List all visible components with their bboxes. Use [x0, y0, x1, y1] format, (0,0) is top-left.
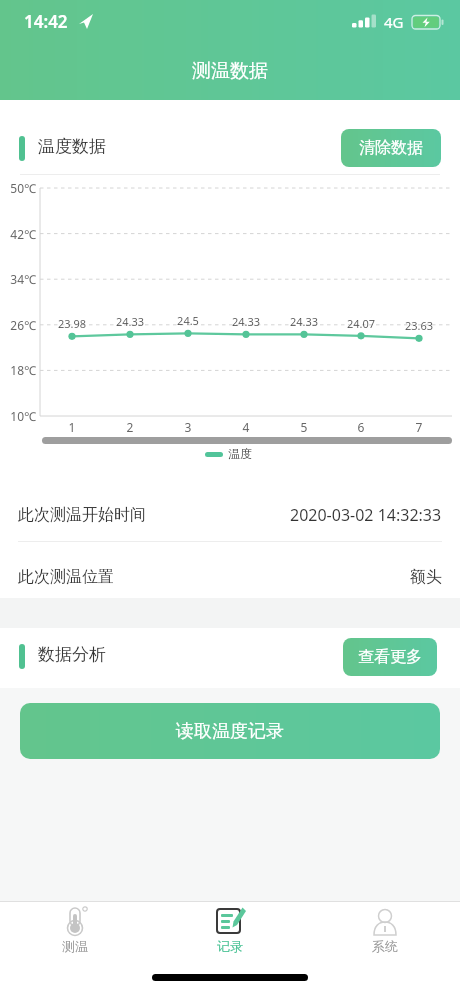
button[interactable]: 查看更多 [343, 638, 437, 676]
staticText: 34℃ [0, 271, 36, 287]
button[interactable]: 系统 [345, 906, 425, 954]
staticText: 10℃ [0, 408, 36, 424]
staticText: 5 [289, 419, 319, 435]
staticText: 14:42 [24, 10, 68, 33]
staticText: 系统 [372, 938, 398, 954]
staticText: 读取温度记录 [176, 720, 284, 743]
staticText: 查看更多 [358, 647, 422, 667]
button[interactable]: 读取温度记录 [20, 703, 440, 759]
staticText: 24.33 [279, 314, 329, 329]
staticText: 23.98 [47, 316, 97, 331]
staticText: 24.33 [221, 314, 271, 329]
staticText: 7 [404, 419, 434, 435]
staticText: 50℃ [0, 180, 36, 196]
staticText: 2 [115, 419, 145, 435]
button[interactable]: 测温 [35, 906, 115, 954]
staticText: 清除数据 [359, 138, 423, 158]
staticText: 此次测温开始时间 [18, 505, 146, 525]
button[interactable]: 清除数据 [341, 129, 441, 167]
staticText: 18℃ [0, 362, 36, 378]
staticText: 24.07 [336, 316, 386, 331]
staticText: 24.5 [163, 313, 213, 328]
staticText: 数据分析 [38, 644, 106, 665]
staticText: 4G [384, 12, 404, 32]
staticText: 6 [346, 419, 376, 435]
staticText: 温度数据 [38, 136, 106, 157]
staticText: 记录 [217, 938, 243, 954]
staticText: 42℃ [0, 226, 36, 242]
staticText: 测温 [62, 938, 88, 954]
staticText: 此次测温位置 [18, 567, 114, 587]
staticText: 2020-03-02 14:32:33 [290, 504, 442, 526]
staticText: 3 [173, 419, 203, 435]
staticText: 26℃ [0, 317, 36, 333]
button[interactable]: 记录 [190, 906, 270, 954]
staticText: 1 [57, 419, 87, 435]
staticText: 温度 [228, 446, 252, 461]
staticText: 额头 [410, 567, 442, 587]
staticText: 4 [231, 419, 261, 435]
staticText: 23.63 [394, 318, 444, 333]
staticText: 24.33 [105, 314, 155, 329]
staticText: 测温数据 [192, 59, 268, 83]
